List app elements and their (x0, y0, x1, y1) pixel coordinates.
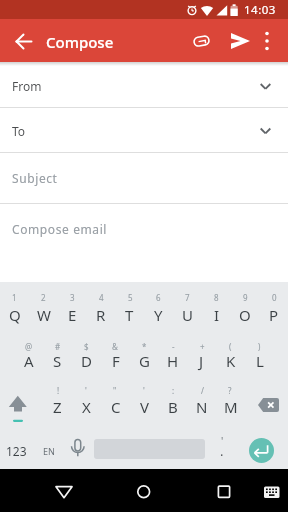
button[interactable]: Compose email (0, 204, 288, 282)
button[interactable]: E (58, 300, 87, 330)
button[interactable]: Q (0, 300, 29, 330)
button[interactable]: K (216, 346, 245, 376)
button[interactable]: O (230, 300, 259, 330)
staticText: R (96, 305, 106, 325)
staticText: O (239, 305, 251, 325)
button[interactable]: N (187, 392, 216, 422)
staticText: EN (43, 445, 55, 457)
staticText: : (172, 385, 175, 396)
staticText: F (112, 351, 120, 371)
button[interactable] (249, 438, 274, 463)
button[interactable] (204, 471, 244, 511)
staticText: * (142, 341, 147, 352)
staticText: 9 (243, 292, 248, 303)
staticText: 14:03 (244, 2, 276, 18)
staticText: N (196, 397, 208, 417)
button[interactable] (256, 477, 286, 507)
staticText: ' (221, 434, 224, 446)
button[interactable]: U (173, 300, 202, 330)
staticText: 123 (6, 443, 27, 459)
staticText: To (12, 123, 26, 139)
staticText: 1 (12, 292, 17, 303)
staticText: L (256, 351, 264, 371)
staticText: S (53, 351, 62, 371)
staticText: V (140, 397, 150, 417)
staticText: From (12, 78, 42, 94)
staticText: @ (25, 341, 33, 352)
button[interactable] (245, 385, 288, 429)
button[interactable]: Subject (0, 153, 288, 203)
button[interactable]: To (0, 108, 288, 152)
staticText: $ (84, 341, 89, 352)
button[interactable]: A (14, 346, 43, 376)
button[interactable]: R (86, 300, 115, 330)
button[interactable]: L (245, 346, 274, 376)
staticText: M (224, 397, 238, 417)
staticText: X (82, 397, 91, 417)
button[interactable] (251, 25, 283, 57)
staticText: 2 (41, 292, 46, 303)
staticText: - (172, 341, 175, 352)
button[interactable] (224, 25, 256, 57)
staticText: E (68, 305, 77, 325)
button[interactable]: P (259, 300, 288, 330)
button[interactable] (0, 385, 43, 429)
staticText: I (214, 305, 220, 325)
staticText: U (182, 305, 193, 325)
staticText: Y (154, 305, 163, 325)
button[interactable]: Y (144, 300, 173, 330)
button[interactable] (8, 25, 40, 57)
button[interactable]: Z (43, 392, 72, 422)
button[interactable]: C (101, 392, 130, 422)
staticText: ) (258, 341, 261, 352)
button[interactable]: 123 (0, 439, 33, 463)
button[interactable]: EN (36, 441, 62, 461)
staticText: D (81, 351, 92, 371)
button[interactable] (185, 25, 217, 57)
staticText: ( (229, 341, 232, 352)
staticText: C (111, 397, 121, 417)
staticText: & (112, 341, 118, 352)
staticText: ' (85, 385, 87, 396)
staticText: A (24, 351, 34, 371)
button[interactable]: D (72, 346, 101, 376)
staticText: G (139, 351, 150, 371)
button[interactable] (124, 471, 164, 511)
button[interactable]: V (130, 392, 159, 422)
staticText: P (269, 305, 279, 325)
staticText: 5 (128, 292, 133, 303)
button[interactable]: M (216, 392, 245, 422)
button[interactable]: H (158, 346, 187, 376)
button[interactable]: B (158, 392, 187, 422)
staticText: 6 (156, 292, 161, 303)
staticText: H (167, 351, 179, 371)
button[interactable] (63, 432, 93, 470)
button[interactable]: S (43, 346, 72, 376)
button[interactable]: G (130, 346, 159, 376)
button[interactable]: I (202, 300, 231, 330)
staticText: ? (228, 385, 232, 396)
staticText: Z (53, 397, 62, 417)
staticText: 7 (185, 292, 190, 303)
staticText: # (55, 341, 61, 352)
staticText: ! (57, 385, 60, 396)
staticText: T (125, 305, 134, 325)
button[interactable]: J (187, 346, 216, 376)
button[interactable]: T (115, 300, 144, 330)
staticText: Q (9, 305, 21, 325)
button[interactable]: . (212, 442, 232, 458)
button[interactable]: W (29, 300, 58, 330)
staticText: / (201, 385, 204, 396)
button[interactable] (44, 471, 84, 511)
button[interactable]: F (101, 346, 130, 376)
staticText: ' (143, 385, 145, 396)
staticText: 0 (272, 292, 277, 303)
staticText: 3 (70, 292, 75, 303)
staticText: B (168, 397, 178, 417)
staticText: 4 (99, 292, 104, 303)
button[interactable]: X (72, 392, 101, 422)
staticText: W (37, 305, 51, 325)
staticText: J (199, 351, 204, 371)
button[interactable]: From (0, 62, 288, 108)
